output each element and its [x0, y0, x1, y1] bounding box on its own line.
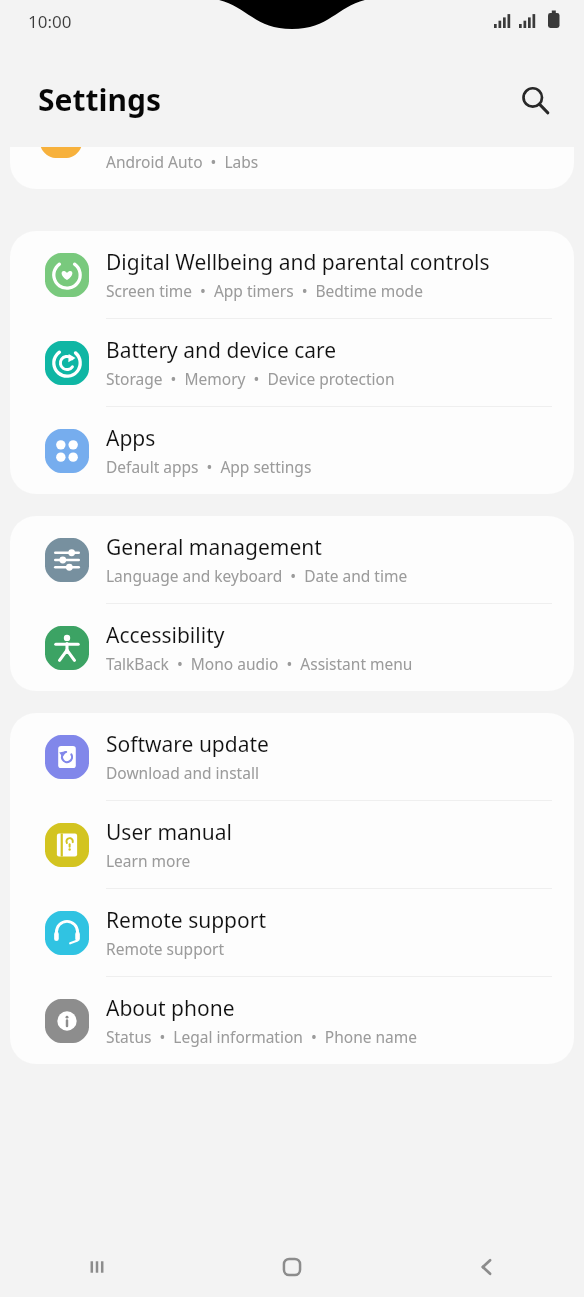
staticText: Status • Legal information • Phone name: [106, 1026, 418, 1047]
staticText: Screen time • App timers • Bedtime mode: [106, 280, 423, 301]
staticText: Digital Wellbeing and parental controls: [106, 248, 490, 277]
staticText: General management: [106, 533, 322, 562]
staticText: Download and install: [106, 762, 259, 783]
button[interactable]: Recents: [0, 1237, 194, 1297]
staticText: TalkBack • Mono audio • Assistant menu: [106, 653, 413, 674]
button[interactable]: Remote support: [10, 889, 574, 977]
staticText: 10:00: [28, 10, 72, 33]
button[interactable]: Software update: [10, 713, 574, 801]
staticText: Remote support: [106, 906, 266, 935]
staticText: Learn more: [106, 850, 191, 871]
staticText: About phone: [106, 994, 235, 1023]
button[interactable]: Back: [389, 1237, 584, 1297]
staticText: Battery and device care: [106, 336, 337, 365]
staticText: Remote support: [106, 938, 225, 959]
button[interactable]: Android Auto • Labs: [10, 147, 574, 189]
button[interactable]: Digital Wellbeing and parental controls: [10, 231, 574, 319]
button[interactable]: General management: [10, 516, 574, 604]
button[interactable]: About phone: [10, 977, 574, 1064]
button[interactable]: Battery and device care: [10, 319, 574, 407]
button[interactable]: User manual: [10, 801, 574, 889]
staticText: Language and keyboard • Date and time: [106, 565, 408, 586]
staticText: Apps: [106, 424, 156, 453]
staticText: Default apps • App settings: [106, 456, 312, 477]
button[interactable]: Apps: [10, 407, 574, 494]
button[interactable]: Accessibility: [10, 604, 574, 691]
button[interactable]: Search: [512, 77, 558, 123]
button[interactable]: Home: [194, 1237, 389, 1297]
staticText: Settings: [38, 79, 161, 120]
staticText: Accessibility: [106, 621, 225, 650]
staticText: Android Auto • Labs: [106, 151, 259, 172]
staticText: User manual: [106, 818, 232, 847]
staticText: Storage • Memory • Device protection: [106, 368, 395, 389]
staticText: Software update: [106, 730, 269, 759]
